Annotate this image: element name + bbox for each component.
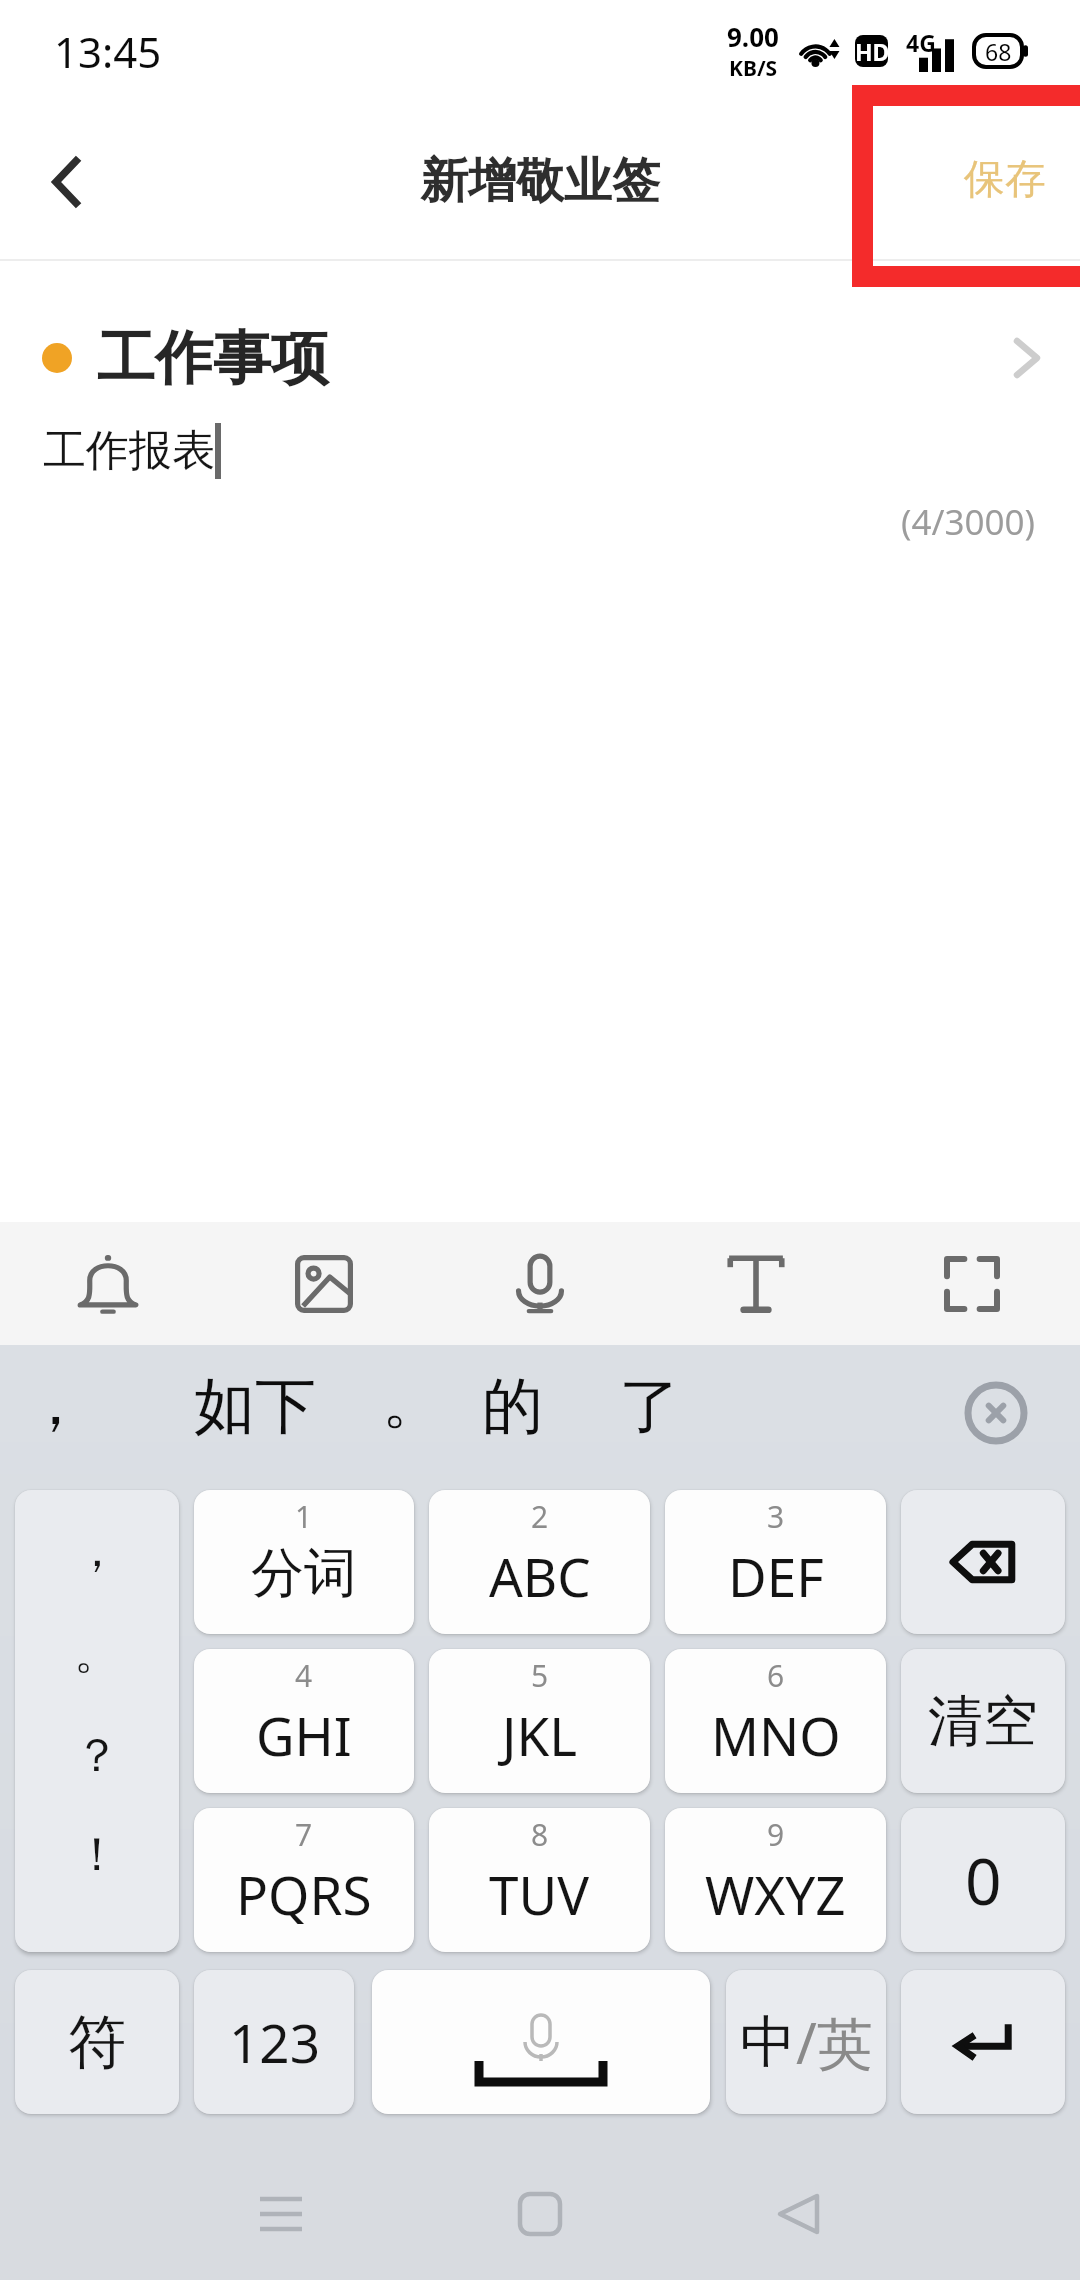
staticText: DEF [728,1540,824,1612]
button[interactable]: Voice input [432,1222,648,1345]
button[interactable]: 如下 [194,1358,316,1454]
staticText: PQRS [236,1858,372,1930]
button[interactable]: 5 [429,1649,650,1793]
staticText: 1 [295,1496,313,1537]
staticText: /英 [796,2004,873,2080]
staticText: 保存 [964,154,1046,206]
staticText: 13:45 [54,23,162,80]
staticText: HD [855,36,888,67]
button[interactable]: 123 [194,1970,354,2114]
button[interactable]: 保存 [904,104,1080,259]
staticText: MNO [711,1699,841,1771]
staticText: 工作报表 [43,424,215,478]
button[interactable]: ， [15,1490,179,1952]
button[interactable]: 4 [194,1649,414,1793]
staticText: KB/S [729,54,778,83]
staticText: 4 [295,1655,313,1696]
staticText: 3 [767,1496,785,1537]
staticText: 123 [229,2006,320,2078]
button[interactable]: 8 [429,1808,650,1952]
button[interactable] [901,1490,1065,1634]
button[interactable] [901,1970,1065,2114]
staticText: ， [74,1522,120,1580]
staticText: 68 [985,36,1012,67]
button[interactable]: Reminder [0,1222,216,1345]
button[interactable]: 的 [482,1358,543,1454]
staticText: ， [25,1365,86,1442]
staticText: 8 [531,1814,549,1855]
staticText: 的 [482,1368,543,1445]
staticText: 清空 [928,1687,1038,1756]
staticText: 2 [531,1496,549,1537]
button[interactable]: 1 [194,1490,414,1634]
button[interactable]: 工作事项 [0,319,1080,397]
staticText: 5 [531,1655,549,1696]
button[interactable]: Home [459,2169,621,2259]
staticText: 9 [767,1814,785,1855]
button[interactable]: Insert image [216,1222,432,1345]
button[interactable]: 9 [665,1808,886,1952]
button[interactable]: ， [25,1355,86,1451]
staticText: 分词 [251,1540,357,1607]
button[interactable]: 。 [382,1353,443,1449]
button[interactable]: 了 [619,1358,680,1454]
staticText: 中 [740,2007,796,2078]
button[interactable]: 符 [15,1970,179,2114]
button[interactable]: 3 [665,1490,886,1634]
button[interactable]: Close candidates [961,1378,1031,1448]
button[interactable]: 清空 [901,1649,1065,1793]
staticText: 。 [382,1363,443,1440]
staticText: 了 [619,1368,680,1445]
button[interactable]: 。 [52,1621,142,1685]
staticText: 符 [68,2006,126,2079]
staticText: WXYZ [705,1858,846,1930]
staticText: ！ [74,1826,120,1884]
button[interactable]: Text style [648,1222,864,1345]
staticText: 。 [74,1624,120,1682]
button[interactable]: 2 [429,1490,650,1634]
staticText: 新增敬业签 [420,151,660,211]
staticText: 0 [965,1837,1002,1924]
button[interactable]: Back [717,2169,879,2259]
staticText: 如下 [194,1368,316,1445]
button[interactable]: Full screen [864,1222,1080,1345]
button[interactable] [372,1970,710,2114]
button[interactable]: ， [52,1519,142,1583]
button[interactable]: 中 [726,1970,886,2114]
staticText: (4/3000) [0,498,1035,546]
button[interactable]: Recents [200,2169,362,2259]
button[interactable]: Back [0,104,132,259]
button[interactable]: 6 [665,1649,886,1793]
staticText: 6 [767,1655,785,1696]
staticText: GHI [256,1699,352,1771]
staticText: 4G [906,27,936,58]
button[interactable]: 0 [901,1808,1065,1952]
button[interactable]: ？ [52,1724,142,1788]
staticText: ？ [74,1727,120,1785]
button[interactable]: ！ [52,1823,142,1887]
staticText: 工作事项 [97,322,329,395]
staticText: TUV [489,1858,590,1930]
staticText: 7 [295,1814,313,1855]
staticText: 9.00 [727,19,779,54]
staticText: JKL [502,1699,578,1771]
staticText: ABC [489,1540,591,1612]
button[interactable]: 7 [194,1808,414,1952]
